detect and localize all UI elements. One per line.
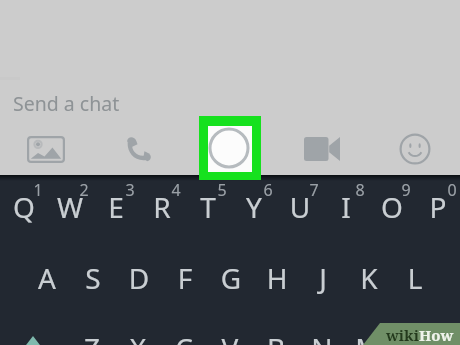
staticText: R <box>132 188 192 226</box>
staticText: 9 <box>386 179 426 201</box>
staticText: 1 <box>18 179 58 201</box>
staticText: F <box>155 259 215 297</box>
button[interactable]: Gallery <box>22 126 69 172</box>
staticText: V <box>200 329 260 345</box>
staticText: E <box>86 188 146 226</box>
staticText: wiki <box>386 325 419 345</box>
button[interactable]: Stickers <box>391 126 438 172</box>
staticText: D <box>109 259 169 297</box>
staticText: S <box>63 259 123 297</box>
staticText: Send a chat <box>13 90 120 117</box>
staticText: W <box>40 188 100 226</box>
staticText: 8 <box>340 179 380 201</box>
button[interactable]: Send a chat <box>0 84 460 118</box>
staticText: 7 <box>294 179 334 201</box>
staticText: Y <box>224 188 284 226</box>
staticText: Z <box>62 329 122 345</box>
staticText: 4 <box>156 179 196 201</box>
staticText: G <box>201 259 261 297</box>
button[interactable]: Camera <box>199 116 261 180</box>
button[interactable]: Video call <box>298 126 345 172</box>
staticText: A <box>17 259 77 297</box>
staticText: L <box>385 259 445 297</box>
staticText: O <box>362 188 422 226</box>
staticText: 6 <box>248 179 288 201</box>
staticText: J <box>293 259 353 297</box>
staticText: 0 <box>432 179 460 201</box>
staticText: U <box>270 188 330 226</box>
staticText: B <box>246 329 306 345</box>
staticText: X <box>108 329 168 345</box>
staticText: How <box>419 325 454 345</box>
button[interactable]: Call <box>114 126 161 172</box>
staticText: 3 <box>110 179 150 201</box>
staticText: T <box>178 188 238 226</box>
staticText: C <box>154 329 214 345</box>
staticText: M <box>338 329 398 345</box>
staticText: N <box>292 329 352 345</box>
staticText: H <box>247 259 307 297</box>
staticText: I <box>316 188 376 226</box>
staticText: Q <box>0 188 54 226</box>
staticText: P <box>408 188 460 226</box>
staticText: K <box>339 259 399 297</box>
staticText: 5 <box>202 179 242 201</box>
staticText: 2 <box>64 179 104 201</box>
